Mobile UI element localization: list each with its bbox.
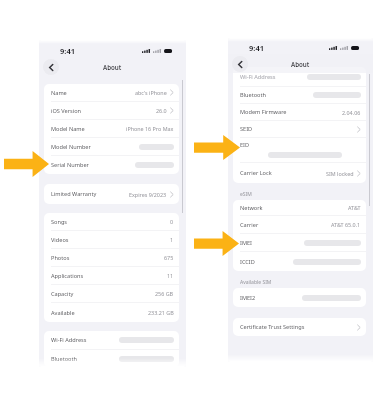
- staticText: Certificate Trust Settings: [240, 323, 305, 331]
- button[interactable]: Carrier Lock: [233, 163, 366, 183]
- staticText: Network: [240, 204, 263, 212]
- button[interactable]: Capacity: [44, 285, 179, 302]
- staticText: Model Name: [51, 125, 85, 133]
- staticText: Songs: [51, 218, 68, 226]
- button[interactable]: Back: [43, 59, 59, 75]
- button[interactable]: Modem Firmware: [233, 104, 366, 120]
- staticText: SEID: [240, 125, 253, 133]
- staticText: Applications: [51, 272, 84, 280]
- staticText: SIM locked: [326, 170, 354, 177]
- button[interactable]: Available: [44, 303, 179, 322]
- staticText: Available: [51, 309, 75, 317]
- staticText: 675: [164, 254, 174, 261]
- staticText: About: [103, 63, 122, 71]
- staticText: iPhone 16 Pro Max: [126, 125, 174, 132]
- staticText: Modem Firmware: [240, 108, 287, 116]
- button[interactable]: Carrier: [233, 216, 366, 233]
- staticText: 26.0: [156, 107, 167, 114]
- button[interactable]: Serial Number: [44, 156, 179, 174]
- button[interactable]: Wi-Fi Address: [44, 331, 179, 349]
- staticText: Videos: [51, 236, 69, 244]
- staticText: Capacity: [51, 290, 74, 298]
- button[interactable]: Wi-Fi Address: [233, 67, 366, 86]
- button[interactable]: Applications: [44, 267, 179, 284]
- staticText: iOS Version: [51, 107, 82, 115]
- staticText: IMEI2: [240, 294, 256, 302]
- button[interactable]: iOS Version: [44, 102, 179, 119]
- staticText: Name: [51, 89, 67, 97]
- button[interactable]: Bluetooth: [233, 87, 366, 103]
- staticText: Limited Warranty: [51, 190, 97, 198]
- button[interactable]: IMEI: [233, 234, 366, 251]
- staticText: 9:41: [249, 43, 264, 53]
- staticText: Serial Number: [51, 161, 89, 169]
- button[interactable]: Name: [44, 84, 179, 101]
- button[interactable]: SEID: [233, 121, 366, 137]
- staticText: Available SIM: [240, 279, 272, 286]
- staticText: 0: [170, 218, 174, 225]
- button[interactable]: Certificate Trust Settings: [233, 318, 366, 336]
- staticText: 2.04.06: [342, 109, 361, 116]
- staticText: IMEI: [240, 239, 252, 247]
- button[interactable]: EID: [233, 138, 366, 162]
- staticText: ICCID: [240, 258, 255, 266]
- staticText: Wi-Fi Address: [51, 336, 87, 344]
- button[interactable]: Limited Warranty: [44, 184, 179, 204]
- staticText: Photos: [51, 254, 70, 262]
- button[interactable]: Back: [232, 56, 248, 72]
- staticText: eSIM: [240, 191, 252, 198]
- staticText: About: [291, 60, 310, 68]
- staticText: EID: [240, 141, 250, 149]
- button[interactable]: ICCID: [233, 252, 366, 271]
- staticText: AT&T 65.0.1: [331, 221, 361, 228]
- staticText: 233.21 GB: [148, 309, 174, 316]
- button[interactable]: Network: [233, 200, 366, 215]
- staticText: Carrier: [240, 221, 259, 229]
- staticText: Bluetooth: [51, 355, 77, 363]
- staticText: AT&T: [348, 204, 361, 211]
- staticText: 1: [170, 236, 174, 243]
- button[interactable]: Videos: [44, 231, 179, 248]
- staticText: 256 GB: [155, 290, 174, 297]
- button[interactable]: Photos: [44, 249, 179, 266]
- button[interactable]: Model Name: [44, 120, 179, 137]
- staticText: Bluetooth: [240, 91, 266, 99]
- button[interactable]: IMEI2: [233, 288, 366, 307]
- button[interactable]: Songs: [44, 213, 179, 230]
- staticText: Model Number: [51, 143, 91, 151]
- staticText: 9:41: [60, 46, 75, 56]
- button[interactable]: Bluetooth: [44, 350, 179, 367]
- staticText: abc's iPhone: [135, 89, 167, 96]
- staticText: Carrier Lock: [240, 169, 272, 177]
- staticText: 11: [167, 272, 174, 279]
- button[interactable]: Model Number: [44, 138, 179, 155]
- staticText: Wi-Fi Address: [240, 73, 276, 81]
- staticText: Expires 9/2023: [129, 191, 167, 198]
